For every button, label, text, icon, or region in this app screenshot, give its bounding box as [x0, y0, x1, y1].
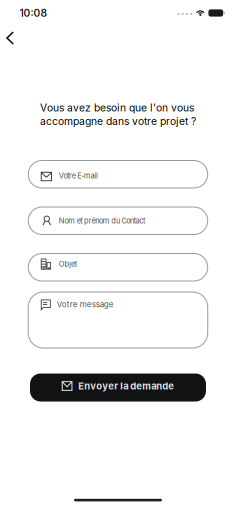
staticText: Votre E-mail [59, 171, 98, 180]
staticText: Envoyer la demande [78, 380, 174, 392]
button[interactable]: Objet [28, 253, 208, 281]
staticText: Votre message [57, 299, 114, 309]
button[interactable]: Back [0, 26, 15, 50]
staticText: 10:08 [19, 7, 47, 19]
button[interactable]: Envoyer la demande [30, 373, 206, 401]
button[interactable]: Votre E-mail [28, 160, 208, 188]
staticText: Objet [59, 259, 77, 268]
button[interactable]: Votre message [28, 291, 208, 348]
button[interactable]: Nom et prénom du Contact [28, 206, 208, 235]
staticText: Vous avez besoin que l'on vous [40, 101, 194, 114]
staticText: Nom et prénom du Contact [59, 216, 145, 225]
staticText: accompagne dans votre projet ? [40, 115, 196, 127]
